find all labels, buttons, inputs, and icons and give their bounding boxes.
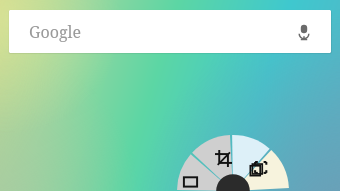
button[interactable]: Resize <box>181 172 199 190</box>
button[interactable]: Voice search <box>291 19 317 45</box>
staticText: Google <box>29 21 291 43</box>
button[interactable]: Duplicate <box>248 159 268 179</box>
button[interactable]: Crop <box>213 148 233 168</box>
button[interactable]: Google <box>9 10 331 53</box>
